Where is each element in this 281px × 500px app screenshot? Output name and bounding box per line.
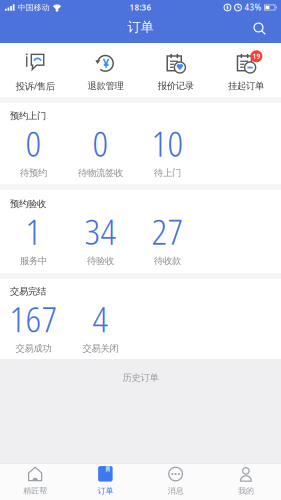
staticText: 待上门 xyxy=(154,167,181,179)
staticText: 消息 xyxy=(168,486,184,496)
button[interactable]: 0 xyxy=(67,129,134,184)
staticText: ¥ xyxy=(103,56,109,70)
staticText: 精匠帮 xyxy=(23,486,47,496)
button[interactable]: 报价记录 xyxy=(140,43,211,97)
staticText: 服务中 xyxy=(20,255,47,267)
button[interactable]: 4 xyxy=(67,304,134,359)
button[interactable]: 消息 xyxy=(140,463,211,500)
button[interactable]: 0 xyxy=(0,129,67,184)
staticText: 19 xyxy=(252,52,260,61)
staticText: 43% xyxy=(244,2,261,13)
staticText: 中国移动 xyxy=(17,3,49,12)
staticText: 订单 xyxy=(97,486,113,496)
staticText: 投诉/售后 xyxy=(16,80,55,92)
staticText: 预约上门 xyxy=(10,110,46,122)
staticText: 0 xyxy=(25,120,41,167)
staticText: 待收款 xyxy=(154,255,181,267)
button[interactable]: 167 xyxy=(0,304,67,359)
staticText: 退款管理 xyxy=(87,80,123,92)
button[interactable]: 订单 xyxy=(70,463,140,500)
staticText: 34 xyxy=(84,208,116,255)
button[interactable]: 搜索 xyxy=(253,21,281,34)
staticText: 预约验收 xyxy=(10,198,46,210)
staticText: 历史订单 xyxy=(122,372,158,383)
staticText: 4 xyxy=(92,296,108,342)
button[interactable]: ¥ xyxy=(70,43,140,97)
staticText: 27 xyxy=(151,208,183,255)
staticText: 1 xyxy=(25,208,41,255)
button[interactable]: 我的 xyxy=(211,463,281,500)
staticText: 18:36 xyxy=(129,2,151,13)
staticText: 交易成功 xyxy=(15,343,51,354)
staticText: 挂起订单 xyxy=(228,80,264,92)
button[interactable]: 投诉/售后 xyxy=(0,43,70,97)
staticText: 0 xyxy=(92,120,108,167)
button[interactable]: 34 xyxy=(67,217,134,272)
button[interactable]: 精匠帮 xyxy=(0,463,70,500)
staticText: 待验收 xyxy=(87,255,114,267)
button[interactable]: 27 xyxy=(134,217,201,272)
staticText: 交易完结 xyxy=(10,286,46,297)
staticText: 报价记录 xyxy=(158,80,194,92)
staticText: 待预约 xyxy=(20,167,47,179)
button[interactable]: 19 xyxy=(211,43,281,97)
staticText: 交易关闭 xyxy=(82,343,118,354)
staticText: 订单 xyxy=(127,19,153,35)
staticText: 167 xyxy=(9,296,57,342)
button[interactable]: 10 xyxy=(134,129,201,184)
staticText: 待物流签收 xyxy=(78,167,123,179)
button[interactable]: 1 xyxy=(0,217,67,272)
button[interactable]: 历史订单 xyxy=(122,359,158,383)
staticText: 10 xyxy=(151,120,183,167)
staticText: 我的 xyxy=(238,486,254,496)
